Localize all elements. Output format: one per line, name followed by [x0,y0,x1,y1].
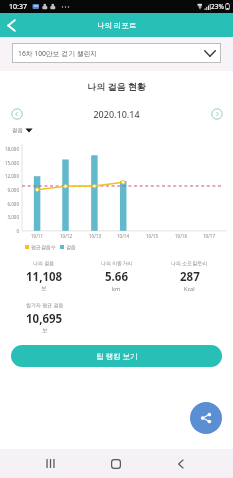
staticText: 2020.10.14 [0,108,233,120]
staticText: 18,000 [0,146,19,152]
staticText: Kcal [184,285,195,292]
staticText: 10/12 [56,233,76,239]
staticText: 10/17 [199,233,219,239]
staticText: 16차 100만보 걷기 챌린지 [18,49,98,58]
staticText: 0 [0,228,19,234]
staticText: 나의 리포트 [97,20,137,30]
staticText: 11,108 [26,269,63,285]
staticText: 287 [180,269,200,285]
staticText: 10/15 [142,233,162,239]
staticText: 5.66 [105,269,128,285]
button[interactable]: Previous day [8,105,25,122]
staticText: 12,000 [0,173,19,179]
staticText: km [112,285,121,292]
staticText: 6,000 [0,201,19,207]
staticText: 10/11 [27,233,47,239]
staticText: 걸음 [66,244,76,250]
staticText: 걸음 [12,127,23,134]
button[interactable]: 팀 랭킹 보기 [11,345,222,367]
staticText: 팀 랭킹 보기 [96,351,138,361]
staticText: 10/16 [171,233,191,239]
button[interactable]: 16차 100만보 걷기 챌린지 [12,43,221,63]
staticText: 참가자 평균 걸음 [26,302,64,309]
staticText: 9,000 [0,187,19,193]
staticText: 10/14 [113,233,133,239]
button[interactable]: Share [190,402,222,434]
button[interactable]: Home [100,449,132,478]
button[interactable]: Next day [208,105,225,122]
staticText: 보 [41,285,47,292]
staticText: 10,695 [26,311,63,327]
staticText: 보 [42,327,48,334]
staticText: 평균걸음수 [31,244,56,250]
staticText: 23% [211,2,224,11]
staticText: 10/13 [85,233,105,239]
button[interactable]: 걸음 [12,126,33,134]
staticText: 15,000 [0,160,19,166]
button[interactable]: Recents [35,449,66,478]
staticText: 나의 소모칼로리 [171,260,208,267]
button[interactable]: Back [0,13,23,37]
staticText: 나의 이동거리 [101,260,133,267]
staticText: 10:37 [9,2,27,12]
staticText: 나의 걸음 현황 [0,80,233,92]
staticText: 3,000 [0,214,19,220]
button[interactable]: Back [165,449,197,478]
staticText: 나의 걸음 [33,260,55,267]
